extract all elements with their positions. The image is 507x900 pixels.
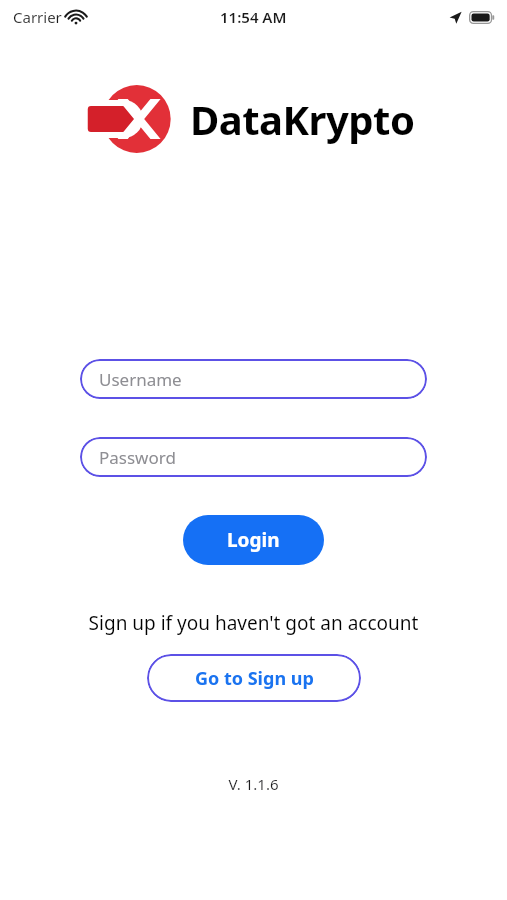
staticText: DataKrypto — [190, 92, 415, 146]
staticText: Sign up if you haven't got an account — [0, 610, 507, 636]
staticText: Carrier — [13, 7, 62, 27]
button[interactable]: Login — [183, 515, 324, 565]
button[interactable]: Go to Sign up — [147, 654, 361, 702]
staticText: V. 1.1.6 — [0, 774, 507, 794]
staticText: Go to Sign up — [195, 666, 314, 691]
staticText: 11:54 AM — [220, 7, 287, 27]
staticText: Login — [227, 527, 280, 553]
button[interactable]: Password — [80, 437, 427, 477]
staticText: Password — [99, 446, 176, 469]
button[interactable]: Username — [80, 359, 427, 399]
staticText: Username — [99, 368, 182, 391]
